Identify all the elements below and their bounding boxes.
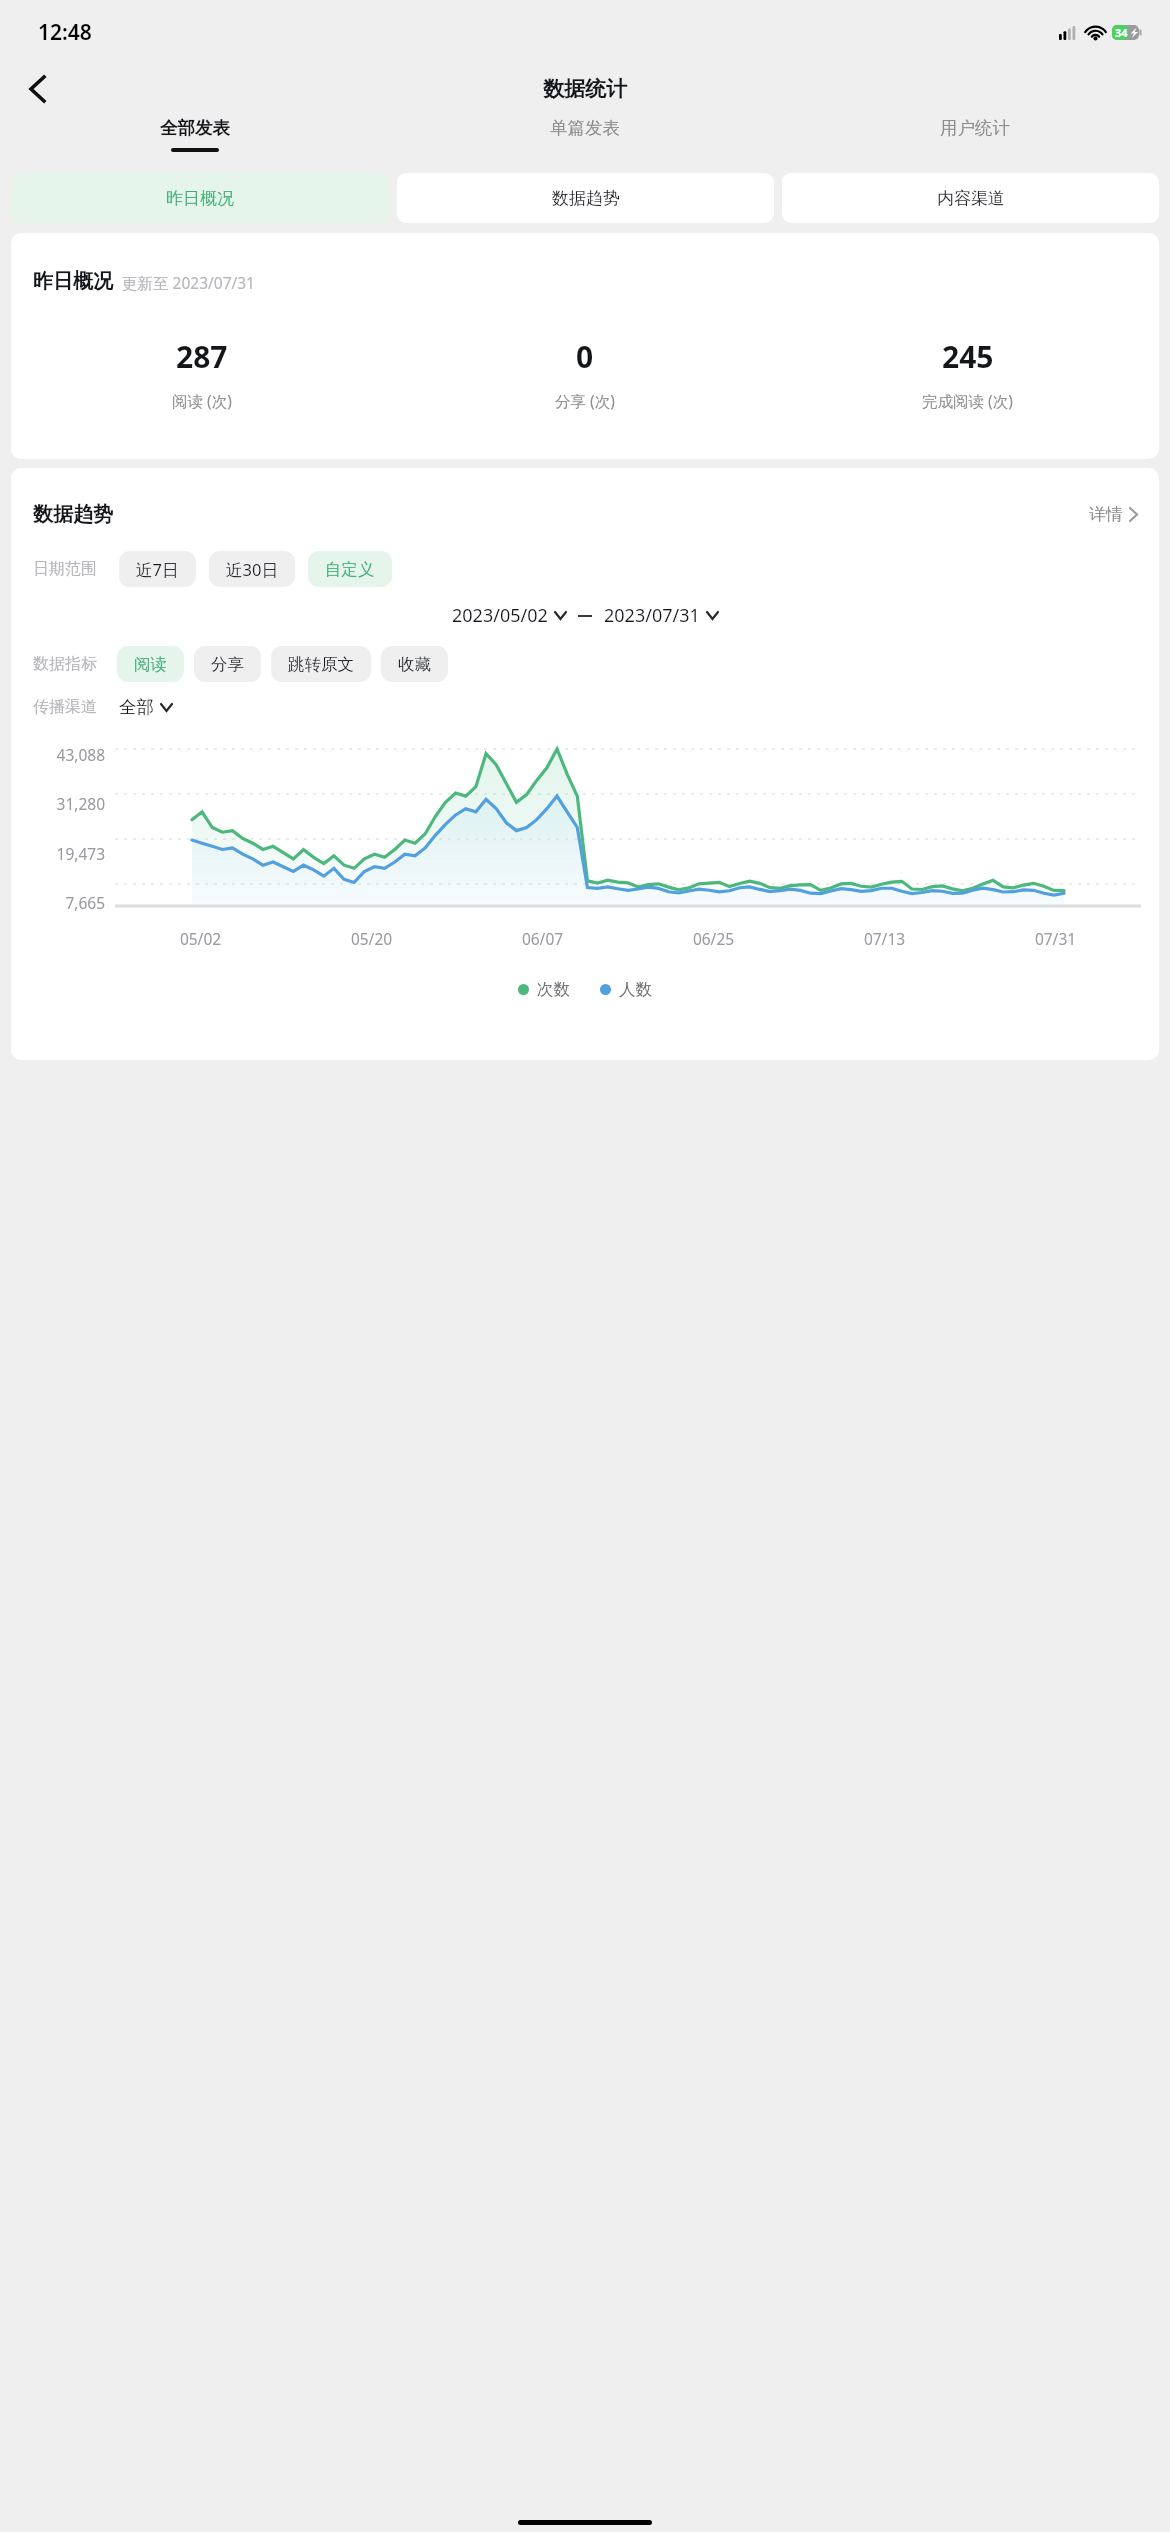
staticText: 0 — [576, 336, 594, 377]
staticText: 12:48 — [38, 18, 92, 47]
staticText: 2023/05/02 — [452, 603, 548, 628]
button[interactable]: 跳转原文 — [271, 646, 371, 682]
staticText: 全部 — [119, 696, 154, 718]
staticText: 自定义 — [325, 559, 375, 580]
button[interactable]: 2023/07/31 — [604, 603, 718, 628]
button[interactable]: 人数 — [600, 979, 652, 1000]
button[interactable]: 数据趋势 — [397, 173, 774, 223]
button[interactable]: 287 — [11, 336, 393, 411]
staticText: 05/02 — [115, 928, 286, 949]
staticText: 34 — [1115, 25, 1128, 40]
staticText: 日期范围 — [33, 559, 97, 579]
staticText: 全部发表 — [160, 117, 230, 139]
staticText: 数据趋势 — [552, 188, 620, 209]
staticText: 更新至 2023/07/31 — [122, 272, 255, 293]
button[interactable]: 全部发表 — [0, 117, 390, 165]
button[interactable]: 单篇发表 — [390, 117, 780, 165]
button[interactable]: Back — [10, 62, 64, 116]
staticText: 06/07 — [457, 928, 628, 949]
staticText: 7,665 — [27, 892, 105, 913]
staticText: 用户统计 — [940, 117, 1010, 139]
staticText: 昨日概况 — [33, 269, 113, 294]
staticText: 05/20 — [286, 928, 457, 949]
staticText: 单篇发表 — [550, 117, 620, 139]
staticText: 数据统计 — [543, 76, 627, 102]
staticText: 43,088 — [27, 744, 105, 765]
button[interactable]: 分享 — [194, 646, 261, 682]
staticText: 分享 (次) — [555, 390, 615, 411]
staticText: 数据指标 — [33, 654, 97, 674]
staticText: 245 — [942, 336, 994, 377]
staticText: 分享 — [211, 654, 244, 675]
button[interactable]: 2023/05/02 — [452, 603, 566, 628]
button[interactable]: 自定义 — [308, 551, 392, 587]
staticText: 次数 — [537, 979, 570, 1000]
button[interactable]: 0 — [393, 336, 776, 411]
staticText: 287 — [176, 336, 228, 377]
staticText: 31,280 — [27, 793, 105, 814]
staticText: 近30日 — [226, 558, 278, 581]
button[interactable]: 收藏 — [381, 646, 448, 682]
button[interactable]: 近30日 — [209, 551, 295, 587]
staticText: 19,473 — [27, 843, 105, 864]
staticText: 昨日概况 — [166, 188, 234, 209]
button[interactable]: 用户统计 — [780, 117, 1170, 165]
button[interactable]: 昨日概况 — [11, 173, 389, 223]
staticText: 阅读 — [134, 654, 167, 675]
staticText: 07/13 — [799, 928, 970, 949]
staticText: 跳转原文 — [288, 654, 354, 675]
staticText: 07/31 — [970, 928, 1141, 949]
button[interactable]: 详情 — [1089, 504, 1137, 525]
staticText: 2023/07/31 — [604, 603, 700, 628]
staticText: 人数 — [619, 979, 652, 1000]
staticText: 阅读 (次) — [172, 390, 232, 411]
staticText: 完成阅读 (次) — [922, 390, 1013, 411]
button[interactable]: 全部 — [119, 696, 172, 718]
staticText: 06/25 — [628, 928, 799, 949]
staticText: 详情 — [1089, 504, 1123, 525]
staticText: 数据趋势 — [33, 502, 113, 527]
staticText: 近7日 — [136, 558, 179, 581]
button[interactable]: 次数 — [518, 979, 570, 1000]
button[interactable]: 245 — [776, 336, 1159, 411]
staticText: 收藏 — [398, 654, 431, 675]
button[interactable]: 内容渠道 — [782, 173, 1159, 223]
staticText: 传播渠道 — [33, 697, 97, 717]
button[interactable]: 近7日 — [119, 551, 196, 587]
staticText: 内容渠道 — [937, 188, 1005, 209]
button[interactable]: 阅读 — [117, 646, 184, 682]
